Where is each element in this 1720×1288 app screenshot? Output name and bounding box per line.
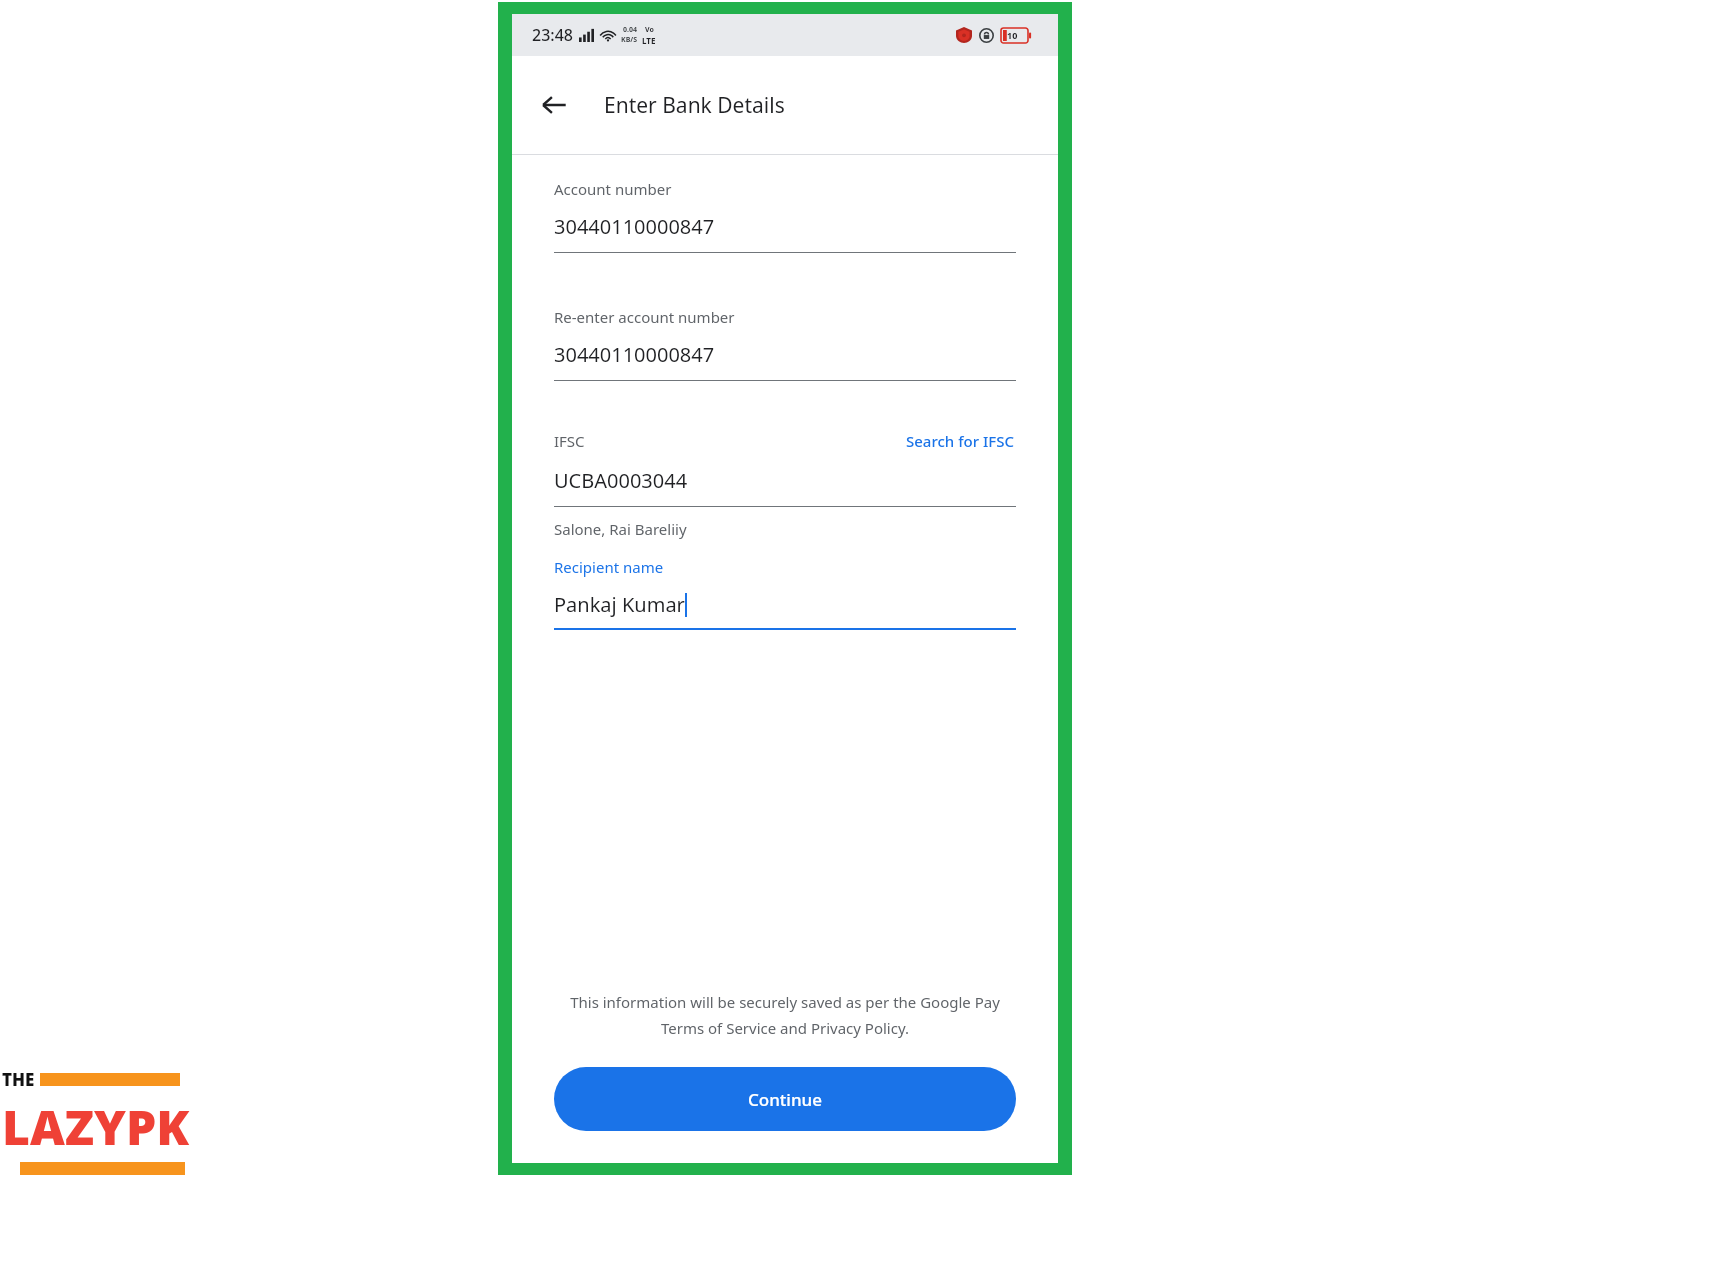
staticText: Enter Bank Details [604,91,785,120]
button[interactable]: Back [530,81,578,129]
staticText: LTE [642,35,656,46]
staticText: UCBA0003044 [554,467,688,494]
staticText: Recipient name [554,557,664,577]
button[interactable]: Continue [554,1067,1016,1131]
button[interactable]: Search for IFSC [904,429,1016,453]
staticText: Pankaj Kumar [554,591,685,618]
staticText: KB/S [621,35,638,45]
staticText: This information will be securely saved … [562,992,1008,1039]
staticText: 30440110000847 [554,341,715,368]
staticText: THE [2,1068,35,1091]
staticText: 0.04 [623,25,637,35]
staticText: IFSC [554,431,585,451]
staticText: Search for IFSC [906,431,1014,451]
staticText: 30440110000847 [554,213,715,240]
staticText: Vo [645,25,654,35]
staticText: Salone, Rai Bareliiy [554,519,687,539]
staticText: 23:48 [532,24,573,46]
staticText: Account number [554,179,672,199]
staticText: Re-enter account number [554,307,735,327]
staticText: 10 [1007,29,1018,41]
staticText: Continue [748,1088,823,1111]
staticText: LAZYPK [2,1094,190,1159]
